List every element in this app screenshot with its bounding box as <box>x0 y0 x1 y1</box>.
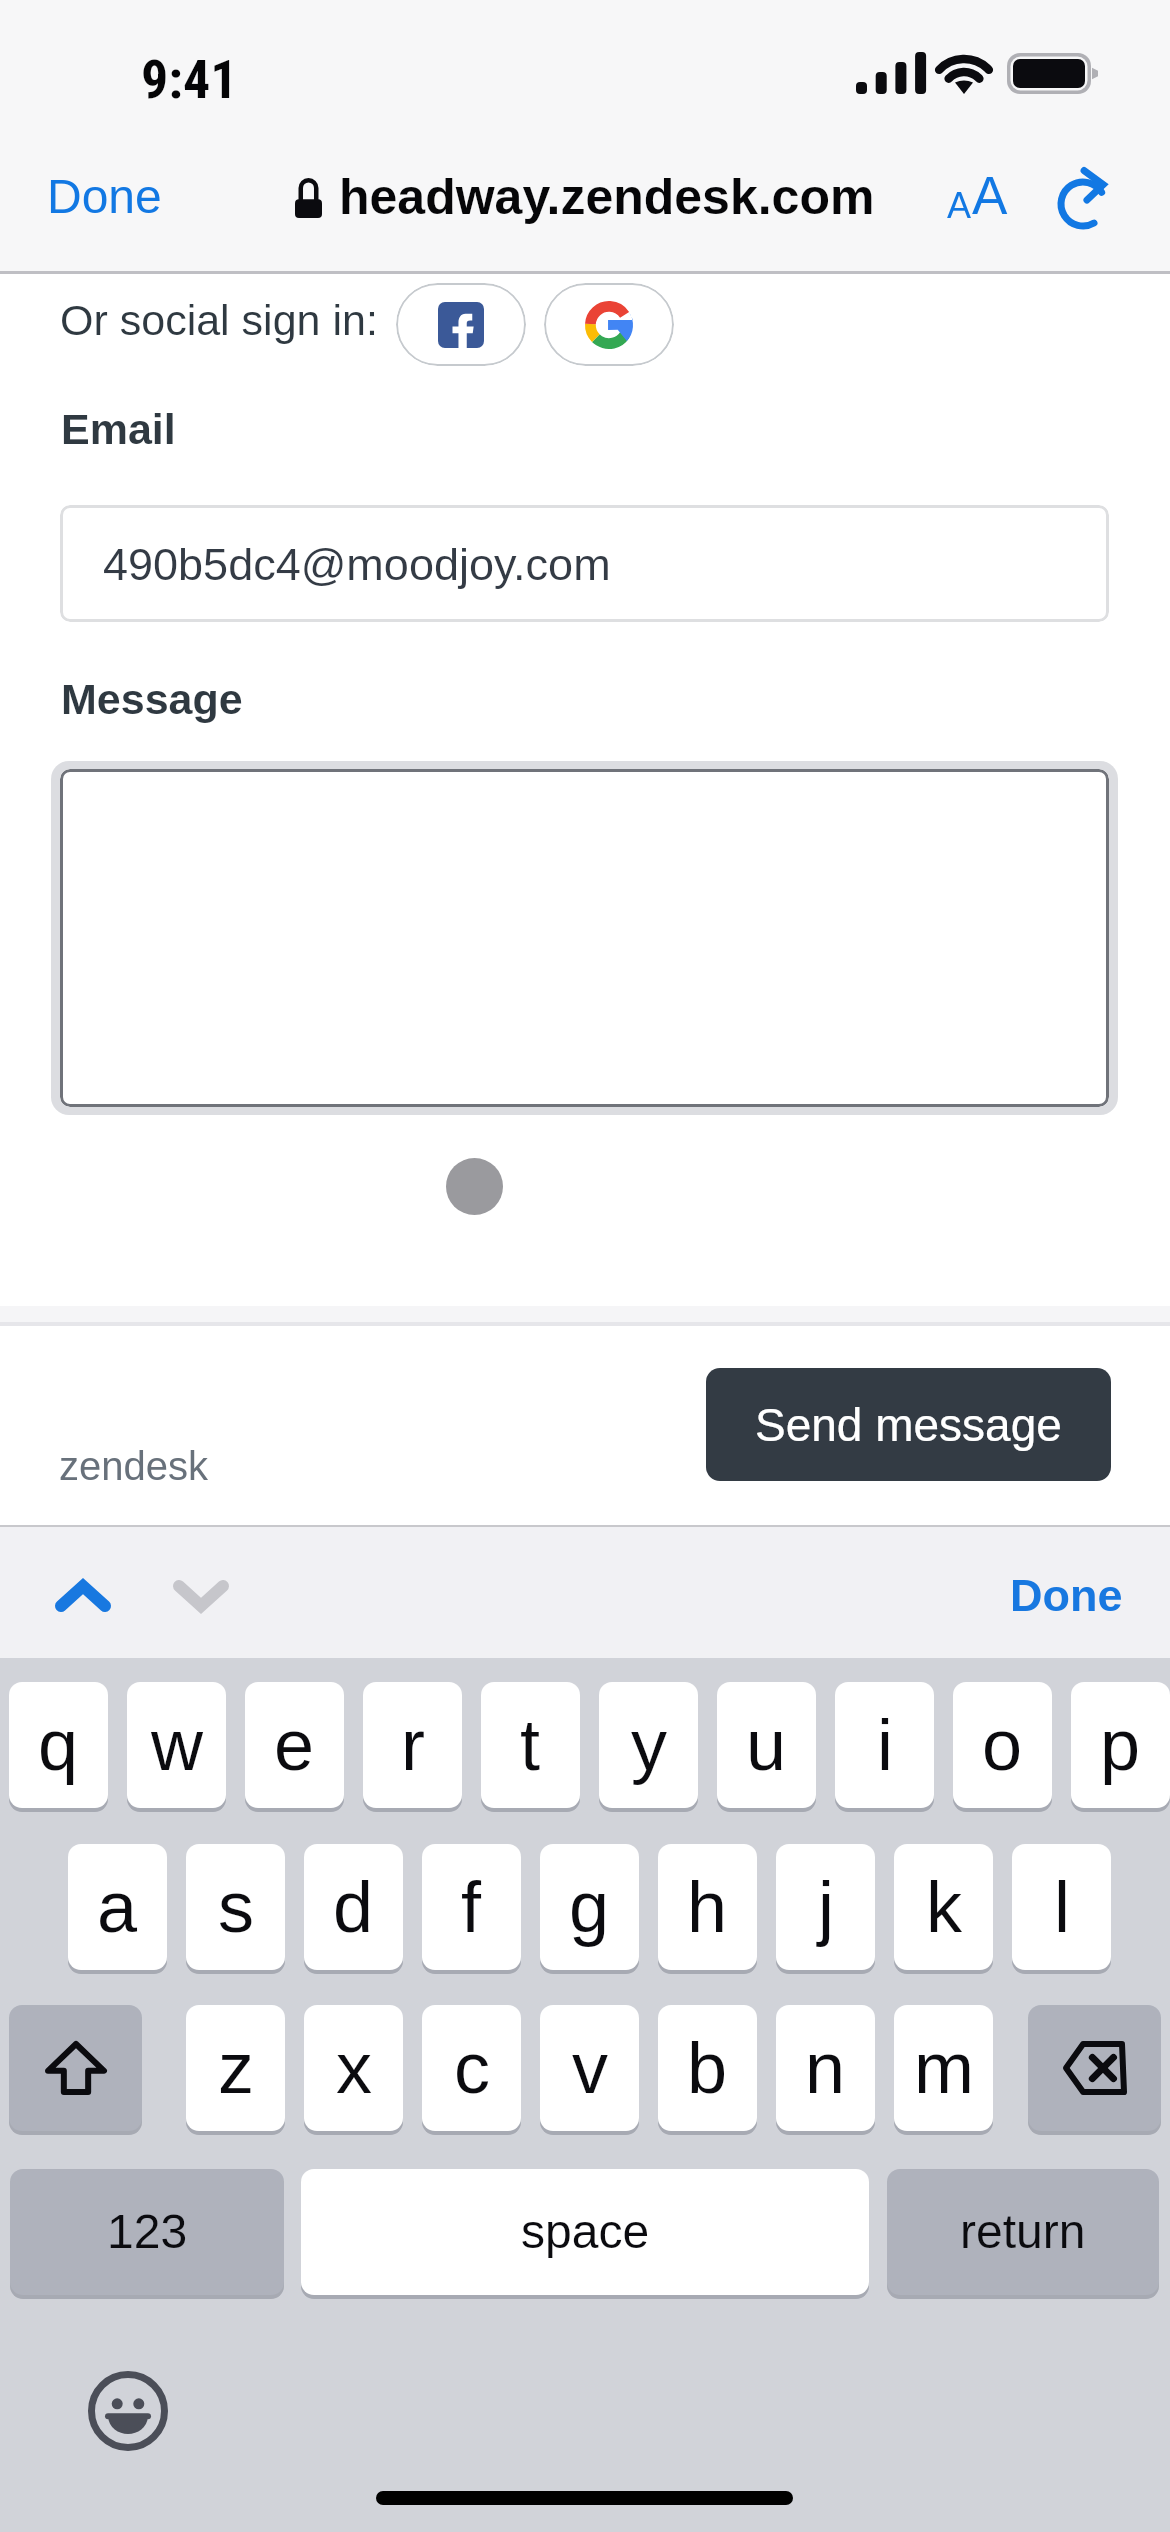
staticText: v <box>572 2028 608 2108</box>
button[interactable]: s <box>186 1844 285 1970</box>
staticText: c <box>454 2028 490 2108</box>
staticText: space <box>521 2205 650 2259</box>
button[interactable]: g <box>540 1844 639 1970</box>
button[interactable]: Done <box>26 144 182 250</box>
staticText: Or social sign in: <box>60 296 378 344</box>
button[interactable]: e <box>245 1682 344 1808</box>
button[interactable]: k <box>894 1844 993 1970</box>
staticText: t <box>520 1705 541 1785</box>
button[interactable]: return <box>887 2169 1159 2295</box>
button[interactable]: q <box>9 1682 108 1808</box>
staticText: u <box>746 1705 787 1785</box>
staticText: h <box>687 1867 728 1947</box>
button[interactable]: Text size options <box>922 145 1032 245</box>
button[interactable]: p <box>1071 1682 1170 1808</box>
staticText: f <box>461 1867 482 1947</box>
button[interactable]: i <box>835 1682 934 1808</box>
button[interactable]: w <box>127 1682 226 1808</box>
button[interactable]: x <box>304 2005 403 2131</box>
staticText: z <box>218 2028 254 2108</box>
button[interactable]: space <box>301 2169 869 2295</box>
staticText: Send message <box>755 1399 1062 1450</box>
staticText: Done <box>1010 1570 1123 1620</box>
staticText: b <box>687 2028 728 2108</box>
button[interactable]: Message input field <box>60 769 1109 1107</box>
button[interactable]: b <box>658 2005 757 2131</box>
button[interactable]: h <box>658 1844 757 1970</box>
staticText: q <box>38 1705 79 1785</box>
button[interactable]: Done <box>986 1540 1146 1650</box>
staticText: d <box>333 1867 374 1947</box>
button[interactable]: Send message <box>706 1368 1111 1481</box>
staticText: Email <box>61 405 176 453</box>
staticText: m <box>914 2028 974 2108</box>
staticText: p <box>1100 1705 1141 1785</box>
button[interactable]: d <box>304 1844 403 1970</box>
staticText: Done <box>47 170 162 224</box>
staticText: return <box>960 2205 1086 2259</box>
button[interactable]: j <box>776 1844 875 1970</box>
button[interactable]: 490b5dc4@moodjoy.com <box>60 505 1109 622</box>
button[interactable]: o <box>953 1682 1052 1808</box>
button[interactable]: Sign in with Google <box>544 283 674 366</box>
staticText: A <box>972 166 1008 225</box>
button[interactable]: Sign in with Facebook <box>396 283 526 366</box>
staticText: x <box>336 2028 372 2108</box>
staticText: e <box>274 1705 315 1785</box>
staticText: 9:41 <box>141 48 238 111</box>
staticText: n <box>805 2028 846 2108</box>
button[interactable]: Emoji keyboard <box>88 2371 168 2451</box>
staticText: l <box>1054 1867 1070 1947</box>
button[interactable]: v <box>540 2005 639 2131</box>
staticText: k <box>926 1867 962 1947</box>
staticText: zendesk <box>59 1444 208 1489</box>
button[interactable]: Next field <box>146 1551 256 1641</box>
button[interactable]: c <box>422 2005 521 2131</box>
staticText: g <box>569 1867 610 1947</box>
button[interactable]: Reload page <box>1034 147 1134 247</box>
staticText: 123 <box>107 2205 188 2259</box>
button[interactable]: y <box>599 1682 698 1808</box>
button[interactable]: r <box>363 1682 462 1808</box>
button[interactable]: t <box>481 1682 580 1808</box>
staticText: a <box>97 1867 138 1947</box>
staticText: y <box>631 1705 667 1785</box>
button[interactable]: l <box>1012 1844 1111 1970</box>
staticText: i <box>877 1705 893 1785</box>
button[interactable]: f <box>422 1844 521 1970</box>
staticText: o <box>982 1705 1023 1785</box>
button[interactable]: Shift <box>9 2005 142 2131</box>
staticText: 490b5dc4@moodjoy.com <box>103 539 611 589</box>
button[interactable]: a <box>68 1844 167 1970</box>
button[interactable]: u <box>717 1682 816 1808</box>
staticText: w <box>151 1705 203 1785</box>
staticText: Message <box>61 675 243 723</box>
button[interactable]: m <box>894 2005 993 2131</box>
staticText: headway.zendesk.com <box>339 169 875 225</box>
button[interactable]: z <box>186 2005 285 2131</box>
staticText: j <box>818 1867 834 1947</box>
button[interactable]: Backspace <box>1028 2005 1161 2131</box>
button[interactable]: 123 <box>10 2169 284 2295</box>
button[interactable]: n <box>776 2005 875 2131</box>
staticText: A <box>947 185 972 225</box>
staticText: s <box>218 1867 254 1947</box>
button[interactable]: Previous field <box>28 1551 138 1641</box>
staticText: r <box>401 1705 425 1785</box>
